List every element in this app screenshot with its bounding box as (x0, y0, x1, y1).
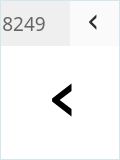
button[interactable]: Back (77, 3, 109, 43)
button[interactable]: 8249 (1, 1, 70, 46)
button[interactable]: Back (41, 73, 85, 117)
staticText: 8249 (2, 11, 46, 37)
